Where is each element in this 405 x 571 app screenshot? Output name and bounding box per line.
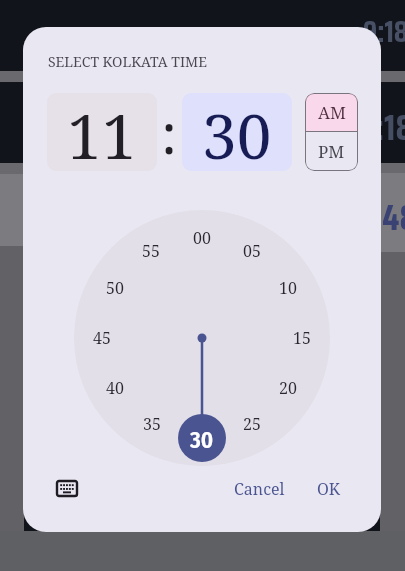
staticText: 9:18: [363, 8, 405, 55]
button[interactable]: Cancel: [229, 474, 289, 504]
button[interactable]: 11: [47, 93, 157, 171]
staticText: 20: [279, 377, 297, 399]
staticText: 05: [243, 240, 261, 262]
button[interactable]: 30: [182, 93, 292, 171]
button[interactable]: 15: [286, 326, 318, 350]
staticText: 30: [190, 426, 214, 450]
staticText: 25: [243, 413, 261, 435]
button[interactable]: OK: [309, 474, 349, 504]
staticText: 9:18: [358, 99, 405, 156]
staticText: 45: [93, 327, 111, 349]
staticText: PM: [318, 140, 345, 163]
staticText: 30: [202, 93, 272, 171]
staticText: 2:48: [357, 189, 405, 246]
staticText: 00: [193, 227, 211, 249]
staticText: SELECT KOLKATA TIME: [48, 52, 207, 71]
button[interactable]: 00: [186, 226, 218, 250]
staticText: 40: [106, 377, 124, 399]
staticText: 35: [143, 413, 161, 435]
button[interactable]: 35: [136, 412, 168, 436]
button[interactable]: 20: [272, 376, 304, 400]
staticText: OK: [317, 478, 341, 500]
staticText: 11: [67, 93, 137, 171]
staticText: :: [161, 94, 178, 170]
staticText: 15: [293, 327, 311, 349]
button[interactable]: 55: [135, 239, 167, 263]
staticText: 10: [279, 277, 297, 299]
button[interactable]: 25: [236, 412, 268, 436]
button[interactable]: 50: [99, 276, 131, 300]
button[interactable]: 45: [86, 326, 118, 350]
staticText: 55: [142, 240, 160, 262]
staticText: 50: [106, 277, 124, 299]
button[interactable]: 40: [99, 376, 131, 400]
button[interactable]: AM: [305, 93, 358, 132]
staticText: Cancel: [234, 478, 285, 500]
staticText: AM: [318, 101, 346, 124]
button[interactable]: PM: [305, 132, 358, 171]
button[interactable]: [55, 476, 79, 500]
button[interactable]: 05: [236, 239, 268, 263]
button[interactable]: 10: [272, 276, 304, 300]
